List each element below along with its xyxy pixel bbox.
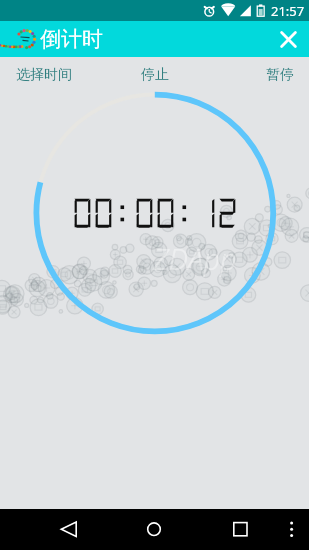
button[interactable]: Back <box>47 509 91 550</box>
staticText: 倒计时 <box>40 26 103 52</box>
button[interactable]: Recents <box>218 509 262 550</box>
button[interactable]: 选择时间 <box>0 57 103 93</box>
staticText: ZDApp <box>153 239 237 278</box>
button[interactable]: 停止 <box>103 57 206 93</box>
staticText: 暂停 <box>266 66 294 84</box>
button[interactable]: More options <box>277 515 307 545</box>
button[interactable]: Home <box>132 509 176 550</box>
staticText: 选择时间 <box>16 66 72 84</box>
button[interactable]: 暂停 <box>206 57 309 93</box>
staticText: 21:57 <box>271 2 305 20</box>
button[interactable]: Close <box>274 25 302 53</box>
staticText: 停止 <box>141 66 169 84</box>
